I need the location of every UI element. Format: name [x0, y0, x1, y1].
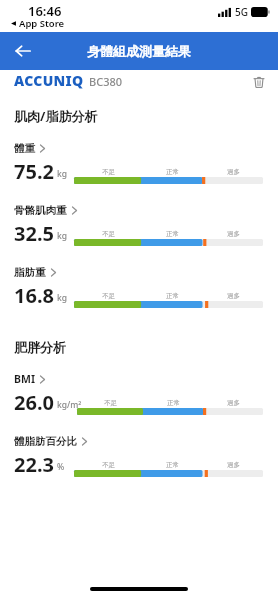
button[interactable]: Back: [8, 36, 38, 66]
button[interactable]: 體重: [0, 142, 278, 184]
staticText: 脂肪重: [14, 266, 46, 279]
staticText: 過多: [227, 168, 240, 176]
staticText: App Store: [19, 17, 65, 30]
staticText: 不足: [102, 168, 115, 176]
staticText: kg: [57, 292, 68, 304]
staticText: 5G: [235, 5, 248, 19]
button[interactable]: 脂肪重: [0, 266, 278, 308]
staticText: BC380: [89, 74, 123, 89]
staticText: 16.8: [14, 282, 54, 307]
staticText: 不足: [102, 461, 115, 469]
staticText: 75.2: [14, 158, 54, 183]
staticText: 22.3: [14, 451, 54, 476]
staticText: 不足: [104, 399, 117, 407]
staticText: 體脂肪百分比: [14, 435, 77, 448]
staticText: 骨骼肌肉重: [14, 204, 67, 217]
staticText: 正常: [166, 230, 179, 238]
staticText: 正常: [166, 292, 179, 300]
staticText: %: [57, 461, 65, 473]
button[interactable]: 骨骼肌肉重: [0, 204, 278, 246]
button[interactable]: 體脂肪百分比: [0, 435, 278, 477]
staticText: 肌肉/脂肪分析: [14, 107, 98, 125]
staticText: 不足: [102, 230, 115, 238]
staticText: kg/m²: [57, 399, 82, 411]
staticText: 過多: [227, 230, 240, 238]
staticText: 正常: [166, 461, 179, 469]
staticText: 肥胖分析: [14, 339, 66, 355]
button[interactable]: Delete: [248, 71, 270, 93]
staticText: 不足: [102, 292, 115, 300]
button[interactable]: BMI: [0, 372, 278, 415]
staticText: 過多: [227, 461, 240, 469]
staticText: 身體組成測量結果: [87, 43, 191, 59]
staticText: 26.0: [14, 389, 54, 414]
staticText: BMI: [14, 372, 35, 386]
staticText: kg: [57, 168, 68, 180]
staticText: 32.5: [14, 220, 54, 245]
staticText: 16:46: [28, 2, 62, 20]
staticText: 體重: [14, 142, 35, 155]
staticText: 過多: [227, 399, 240, 407]
staticText: ACCUNIQ: [14, 71, 84, 90]
staticText: kg: [57, 230, 68, 242]
staticText: 正常: [167, 399, 180, 407]
staticText: 過多: [227, 292, 240, 300]
staticText: 正常: [166, 168, 179, 176]
